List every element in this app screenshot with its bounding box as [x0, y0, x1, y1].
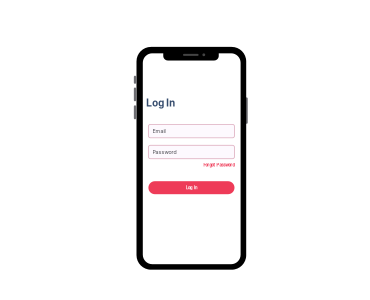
button[interactable]: Email — [148, 124, 234, 138]
staticText: Forgot Password — [203, 163, 234, 168]
staticText: Email — [153, 128, 166, 134]
button[interactable]: Forgot Password — [148, 162, 234, 168]
button[interactable]: Password — [148, 145, 234, 159]
staticText: Password — [153, 149, 177, 155]
button[interactable]: Log In — [148, 181, 234, 194]
staticText: Log In — [146, 97, 175, 109]
staticText: Log In — [186, 185, 197, 190]
